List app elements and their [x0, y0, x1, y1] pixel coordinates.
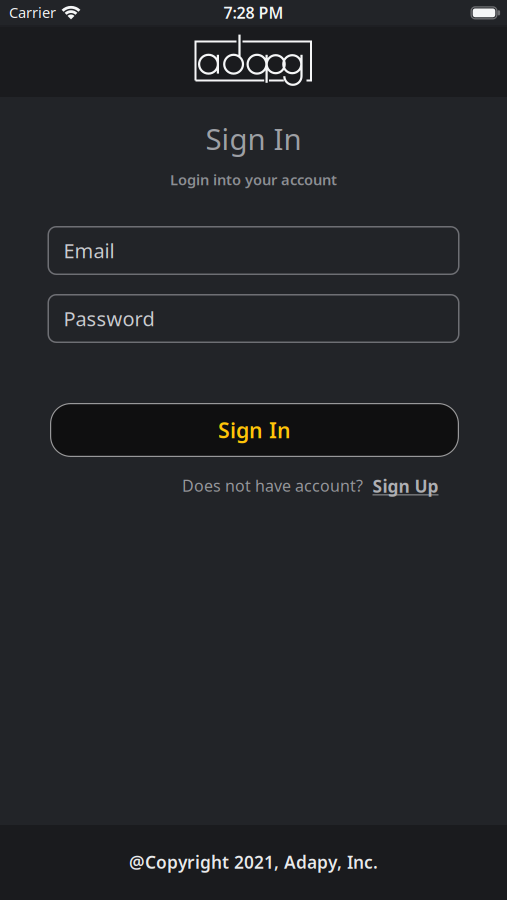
staticText: Carrier [9, 3, 56, 22]
button[interactable]: Password [47, 294, 459, 343]
staticText: @Copyright 2021, Adapy, Inc. [129, 850, 378, 873]
staticText: Login into your account [170, 170, 337, 189]
button[interactable]: Email [47, 226, 459, 275]
button[interactable]: Sign Up [372, 474, 438, 497]
staticText: Sign Up [372, 474, 438, 497]
staticText: Sign In [205, 119, 301, 158]
button[interactable]: Sign In [50, 403, 459, 457]
staticText: Password [63, 305, 154, 332]
staticText: Email [63, 237, 114, 264]
staticText: 7:28 PM [223, 2, 283, 23]
staticText: Sign In [218, 416, 291, 444]
staticText: Does not have account? [182, 475, 363, 496]
